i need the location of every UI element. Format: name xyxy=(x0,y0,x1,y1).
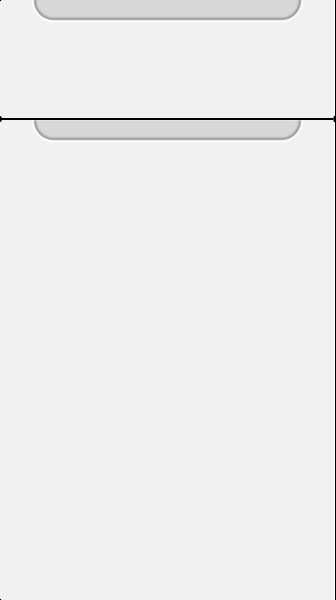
button[interactable]: Row 1 xyxy=(29,0,306,25)
button[interactable]: Row 2 xyxy=(29,91,306,145)
